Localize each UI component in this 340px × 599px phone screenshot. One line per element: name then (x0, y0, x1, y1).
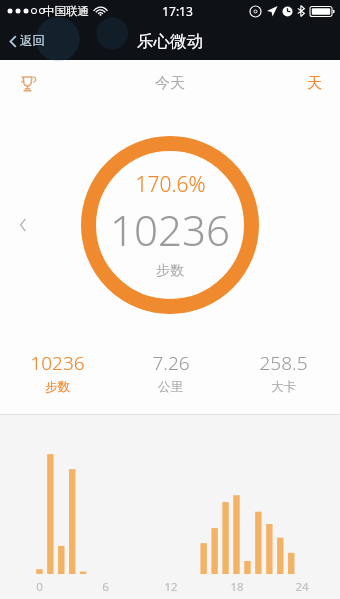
staticText: 170.6% (135, 170, 206, 199)
button[interactable]: 7.26 (114, 344, 227, 400)
staticText: 10236 (30, 350, 85, 376)
staticText: 17:13 (162, 3, 193, 19)
button[interactable]: 返回 (3, 28, 51, 54)
button[interactable]: 258.5 (227, 344, 340, 400)
staticText: 今天 (155, 74, 185, 93)
staticText: 10236 (110, 201, 230, 258)
staticText: 步数 (45, 379, 70, 395)
button[interactable]: 今天 (139, 67, 201, 100)
staticText: 天 (307, 74, 322, 93)
button[interactable]: 天 (297, 67, 332, 100)
staticText: 大卡 (271, 379, 296, 395)
staticText: 中国联通 (43, 4, 89, 18)
button[interactable]: 上一天 (11, 210, 35, 240)
staticText: 12 (164, 579, 178, 595)
button[interactable]: 奖杯 (12, 68, 43, 99)
staticText: 18 (230, 579, 244, 595)
staticText: 7.26 (152, 350, 190, 376)
staticText: 乐心微动 (137, 31, 203, 52)
staticText: 返回 (20, 33, 45, 49)
staticText: 6 (102, 579, 109, 595)
staticText: 公里 (158, 379, 183, 395)
button[interactable]: 10236 (0, 344, 114, 400)
staticText: 258.5 (259, 350, 308, 376)
staticText: 步数 (156, 262, 184, 280)
staticText: 24 (295, 579, 309, 595)
staticText: 0 (36, 579, 43, 595)
